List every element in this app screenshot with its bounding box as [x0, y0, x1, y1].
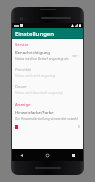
staticText: Status wird dauerhaft angezeigt: [15, 91, 63, 95]
staticText: Hinweisfarbe/Farbe: [15, 110, 54, 116]
button[interactable]: Benachrichtigung aktivieren: [12, 49, 83, 62]
staticText: Einstellungen: [15, 30, 55, 38]
staticText: Dauer: [15, 84, 28, 90]
button[interactable]: Dauer: [12, 83, 83, 96]
button[interactable]: Benachrichtigung aktivieren: [71, 53, 80, 59]
button[interactable]: Back: [17, 151, 26, 160]
staticText: Status wird bei Bedarf angezeigt als: [15, 57, 69, 61]
button[interactable]: Recents: [69, 151, 78, 160]
staticText: Anzeige: [15, 102, 31, 107]
button[interactable]: Priorität: [12, 66, 83, 79]
button[interactable]: 0: [12, 124, 83, 130]
staticText: Die Hinweisdarstellung verwendet sowohl …: [15, 117, 80, 121]
staticText: Status wird nicht angezeigt: [15, 74, 56, 78]
staticText: Benachrichtigung aktivieren: [15, 50, 69, 56]
button[interactable]: Home: [43, 151, 52, 160]
staticText: Service: [15, 42, 29, 47]
button[interactable]: Hinweisfarbe/Farbe: [12, 109, 83, 122]
staticText: 0: [78, 125, 80, 129]
staticText: Priorität: [15, 67, 32, 73]
